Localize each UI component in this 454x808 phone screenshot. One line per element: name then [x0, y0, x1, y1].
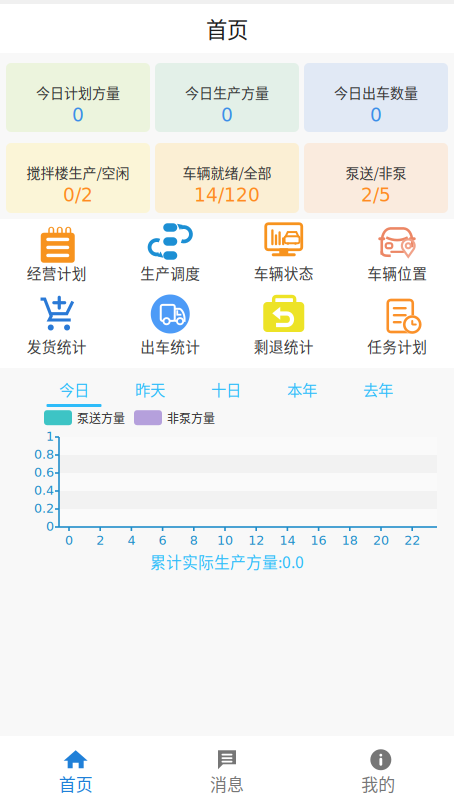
button[interactable]: 我的	[303, 736, 454, 808]
staticText: 去年	[363, 378, 393, 400]
staticText: 0	[65, 533, 73, 548]
staticText: 本年	[287, 378, 317, 400]
button[interactable]: 今日出车数量	[304, 63, 448, 132]
staticText: 2/5	[361, 184, 391, 206]
button[interactable]: 发货统计	[0, 295, 113, 357]
staticText: 10	[217, 533, 233, 548]
button[interactable]: 首页	[0, 736, 151, 808]
staticText: 生产调度	[140, 262, 200, 283]
button[interactable]: 经营计划	[0, 222, 113, 283]
staticText: 14/120	[194, 184, 260, 206]
staticText: 12	[248, 533, 264, 548]
staticText: 经营计划	[27, 262, 87, 283]
button[interactable]: 车辆状态	[227, 222, 340, 283]
button[interactable]: 剩退统计	[227, 295, 340, 357]
staticText: 任务计划	[367, 335, 427, 357]
button[interactable]: 今日生产方量	[155, 63, 299, 132]
staticText: 搅拌楼生产/空闲	[26, 162, 129, 182]
staticText: 今日生产方量	[185, 82, 269, 102]
button[interactable]: 十日	[188, 378, 264, 407]
staticText: 0	[221, 104, 233, 126]
staticText: 今日	[59, 378, 89, 400]
staticText: 剩退统计	[254, 335, 314, 357]
button[interactable]: 搅拌楼生产/空闲	[6, 143, 150, 213]
button[interactable]: 今日计划方量	[6, 63, 150, 132]
staticText: 4	[127, 533, 135, 548]
staticText: 泵送/非泵	[345, 162, 406, 182]
button[interactable]: 出车统计	[113, 295, 227, 357]
staticText: 16	[311, 533, 327, 548]
staticText: 0.6	[34, 465, 54, 480]
staticText: 8	[190, 533, 198, 548]
staticText: 出车统计	[140, 335, 200, 357]
button[interactable]: 任务计划	[340, 295, 454, 357]
staticText: 0	[370, 104, 382, 126]
button[interactable]: 今日	[36, 378, 112, 407]
staticText: 18	[342, 533, 358, 548]
staticText: 今日计划方量	[36, 82, 120, 102]
staticText: 累计实际生产方量:0.0	[150, 550, 304, 573]
staticText: 车辆状态	[254, 262, 314, 283]
staticText: 20	[373, 533, 389, 548]
staticText: 昨天	[135, 378, 165, 400]
staticText: 0.4	[34, 483, 54, 498]
staticText: 首页	[206, 13, 248, 44]
staticText: 车辆就绪/全部	[182, 162, 271, 182]
button[interactable]: 昨天	[112, 378, 188, 407]
staticText: 消息	[210, 771, 244, 796]
staticText: 0.8	[34, 447, 54, 462]
staticText: 0.2	[34, 501, 54, 516]
staticText: 2	[96, 533, 104, 548]
staticText: 0	[46, 519, 54, 534]
staticText: 0/2	[63, 184, 93, 206]
staticText: 首页	[59, 771, 93, 796]
button[interactable]: 车辆位置	[340, 222, 454, 283]
button[interactable]: 泵送/非泵	[304, 143, 448, 213]
staticText: 发货统计	[27, 335, 87, 357]
staticText: 今日出车数量	[334, 82, 418, 102]
staticText: 车辆位置	[367, 262, 427, 283]
staticText: 1	[46, 429, 54, 444]
staticText: 14	[279, 533, 295, 548]
staticText: 非泵方量	[167, 409, 215, 426]
button[interactable]: 车辆就绪/全部	[155, 143, 299, 213]
staticText: 泵送方量	[77, 409, 125, 426]
staticText: 6	[159, 533, 167, 548]
button[interactable]: 本年	[264, 378, 340, 407]
staticText: 0	[72, 104, 84, 126]
button[interactable]: 去年	[340, 378, 416, 407]
button[interactable]: 生产调度	[113, 222, 227, 283]
staticText: 我的	[361, 771, 395, 796]
staticText: 十日	[211, 378, 241, 400]
staticText: 22	[404, 533, 420, 548]
button[interactable]: 消息	[151, 736, 303, 808]
